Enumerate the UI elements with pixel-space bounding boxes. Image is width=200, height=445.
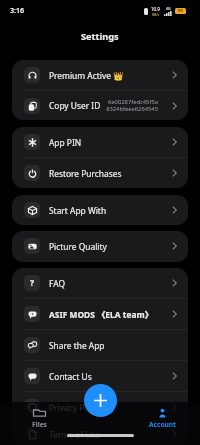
staticText: Settings: [81, 30, 119, 43]
button[interactable]: Files: [21, 408, 57, 429]
staticText: App PIN: [49, 137, 82, 148]
staticText: Picture Quality: [49, 241, 107, 252]
staticText: 10.9: [151, 6, 160, 12]
staticText: Restore Purchases: [49, 168, 122, 179]
button[interactable]: Add: [84, 384, 117, 417]
button[interactable]: Account: [144, 408, 180, 429]
button[interactable]: Premium Active 👑: [12, 60, 188, 90]
staticText: Account: [149, 420, 176, 429]
button[interactable]: ?: [12, 268, 188, 298]
button[interactable]: Terms of Use: [12, 423, 188, 445]
staticText: Terms of Use: [49, 429, 101, 440]
staticText: Privacy Policy: [49, 402, 102, 413]
staticText: 95: [178, 8, 183, 14]
button[interactable]: Contact Us: [12, 361, 188, 391]
button[interactable]: Copy User ID: [12, 91, 188, 120]
staticText: Contact Us: [49, 371, 92, 382]
button[interactable]: Privacy Policy: [12, 392, 188, 422]
staticText: FAQ: [49, 278, 65, 289]
staticText: Copy User ID: [49, 100, 101, 111]
staticText: ASIF MODS 《ELA team》: [49, 309, 153, 320]
button[interactable]: Start App With: [12, 195, 188, 225]
staticText: Files: [32, 420, 47, 429]
staticText: Share the App: [49, 340, 105, 351]
staticText: Start App With: [49, 205, 107, 216]
staticText: ?: [30, 277, 35, 289]
staticText: 6e00287fedc45f5a 8324bfeee6264545: [106, 98, 158, 113]
staticText: 3:16: [10, 6, 24, 16]
button[interactable]: Picture Quality: [12, 231, 188, 261]
button[interactable]: ASIF MODS 《ELA team》: [12, 299, 188, 329]
staticText: KB/s: [152, 12, 160, 17]
button[interactable]: App PIN: [12, 127, 188, 157]
button[interactable]: Share the App: [12, 330, 188, 360]
button[interactable]: Restore Purchases: [12, 158, 188, 188]
staticText: 4G: [166, 6, 171, 11]
staticText: Premium Active 👑: [49, 70, 124, 81]
